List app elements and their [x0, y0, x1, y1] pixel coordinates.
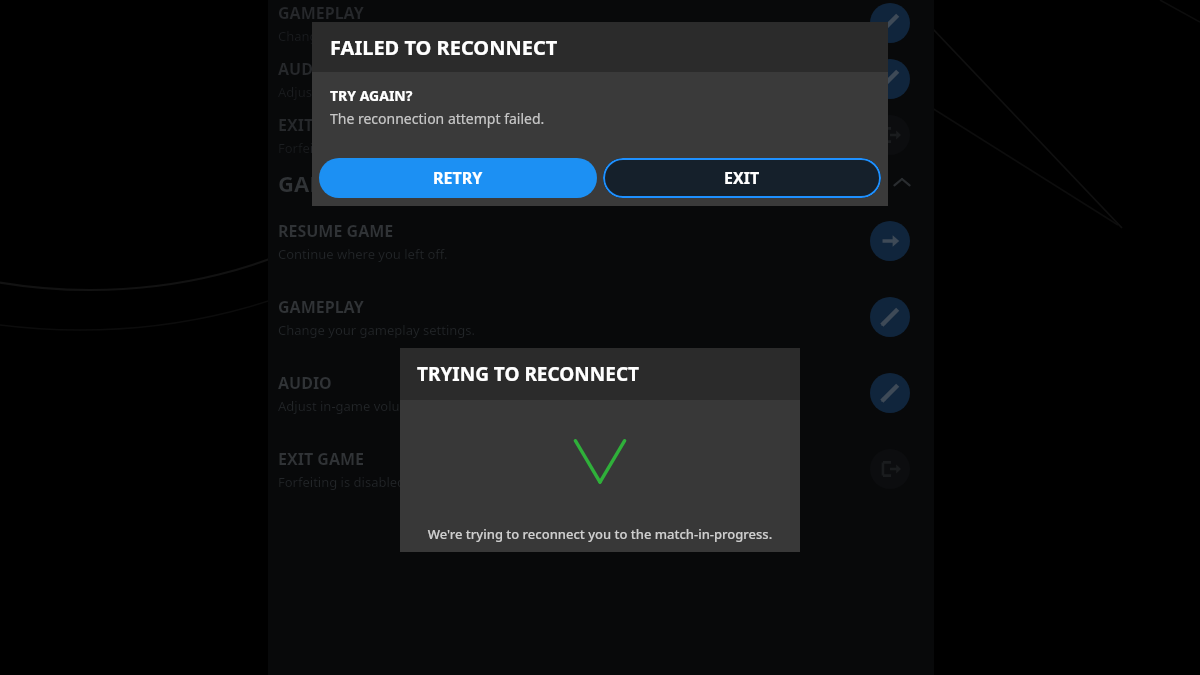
staticText: Adjust in-game volume levels. [278, 397, 460, 415]
button[interactable]: AUDIO [268, 56, 934, 102]
staticText: EXIT [724, 167, 760, 189]
button[interactable]: EXIT [603, 158, 881, 198]
staticText: RESUME GAME [278, 220, 394, 242]
staticText: Change your gameplay settings. [278, 321, 476, 339]
staticText: GAMEPLAY [278, 2, 364, 24]
button[interactable]: Exit game [870, 115, 910, 155]
button[interactable]: Edit [870, 3, 910, 43]
button[interactable]: Collapse [892, 173, 912, 193]
staticText: FAILED TO RECONNECT [330, 34, 558, 61]
button[interactable]: GAMEPLAY [268, 294, 934, 340]
button[interactable]: Edit [870, 59, 910, 99]
staticText: AUDIO [278, 58, 332, 80]
staticText: Adjust in-game volume levels. [278, 83, 460, 101]
button[interactable]: EXIT GAME [268, 446, 934, 492]
button[interactable]: EXIT GAME [268, 112, 934, 158]
staticText: We're trying to reconnect you to the mat… [400, 525, 800, 543]
button[interactable]: Resume [870, 221, 910, 261]
staticText: EXIT GAME [278, 448, 365, 470]
staticText: Continue where you left off. [278, 245, 448, 263]
staticText: GAME PAUSED [278, 168, 433, 198]
button[interactable]: Edit [870, 373, 910, 413]
staticText: TRY AGAIN? [330, 86, 413, 105]
staticText: GAMEPLAY [278, 296, 364, 318]
staticText: AUDIO [278, 372, 332, 394]
staticText: Change your gameplay settings. [278, 27, 476, 45]
staticText: Forfeiting is disabled. [278, 139, 409, 157]
button[interactable]: Edit [870, 297, 910, 337]
staticText: RETRY [433, 167, 483, 189]
staticText: EXIT GAME [278, 114, 365, 136]
staticText: The reconnection attempt failed. [330, 109, 545, 128]
button[interactable]: GAMEPLAY [268, 0, 934, 46]
staticText: Forfeiting is disabled. [278, 473, 409, 491]
button[interactable]: Exit game [870, 449, 910, 489]
button[interactable]: RETRY [319, 158, 597, 198]
button[interactable]: RESUME GAME [268, 218, 934, 264]
button[interactable]: AUDIO [268, 370, 934, 416]
staticText: TRYING TO RECONNECT [417, 361, 640, 387]
